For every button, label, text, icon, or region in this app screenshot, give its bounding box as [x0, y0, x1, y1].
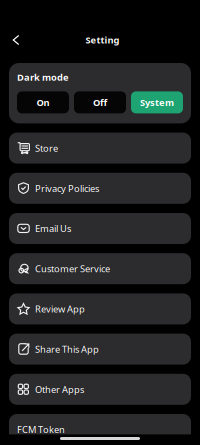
button[interactable]: System — [131, 91, 183, 113]
staticText: Other Apps — [35, 383, 84, 395]
button[interactable]: Privacy Policies — [9, 173, 191, 204]
staticText: Share This App — [35, 343, 99, 355]
staticText: Email Us — [35, 222, 71, 235]
staticText: Dark mode — [17, 71, 69, 83]
button[interactable]: Off — [74, 91, 126, 113]
staticText: On — [36, 96, 49, 109]
staticText: FCM Token — [17, 423, 65, 436]
button[interactable]: On — [17, 91, 69, 113]
button[interactable]: Share This App — [9, 334, 191, 365]
button[interactable]: Other Apps — [9, 374, 191, 405]
staticText: System — [140, 96, 174, 109]
staticText: Customer Service — [35, 262, 110, 275]
button[interactable]: Back — [8, 32, 24, 48]
staticText: Review App — [35, 303, 85, 315]
staticText: Setting — [85, 34, 119, 46]
staticText: Privacy Policies — [35, 182, 99, 194]
button[interactable]: Review App — [9, 293, 191, 324]
button[interactable]: FCM Token — [9, 414, 191, 445]
button[interactable]: Customer Service — [9, 253, 191, 284]
button[interactable]: Store — [9, 133, 191, 164]
button[interactable]: Email Us — [9, 213, 191, 244]
staticText: Store — [35, 142, 58, 154]
staticText: Off — [93, 96, 107, 109]
